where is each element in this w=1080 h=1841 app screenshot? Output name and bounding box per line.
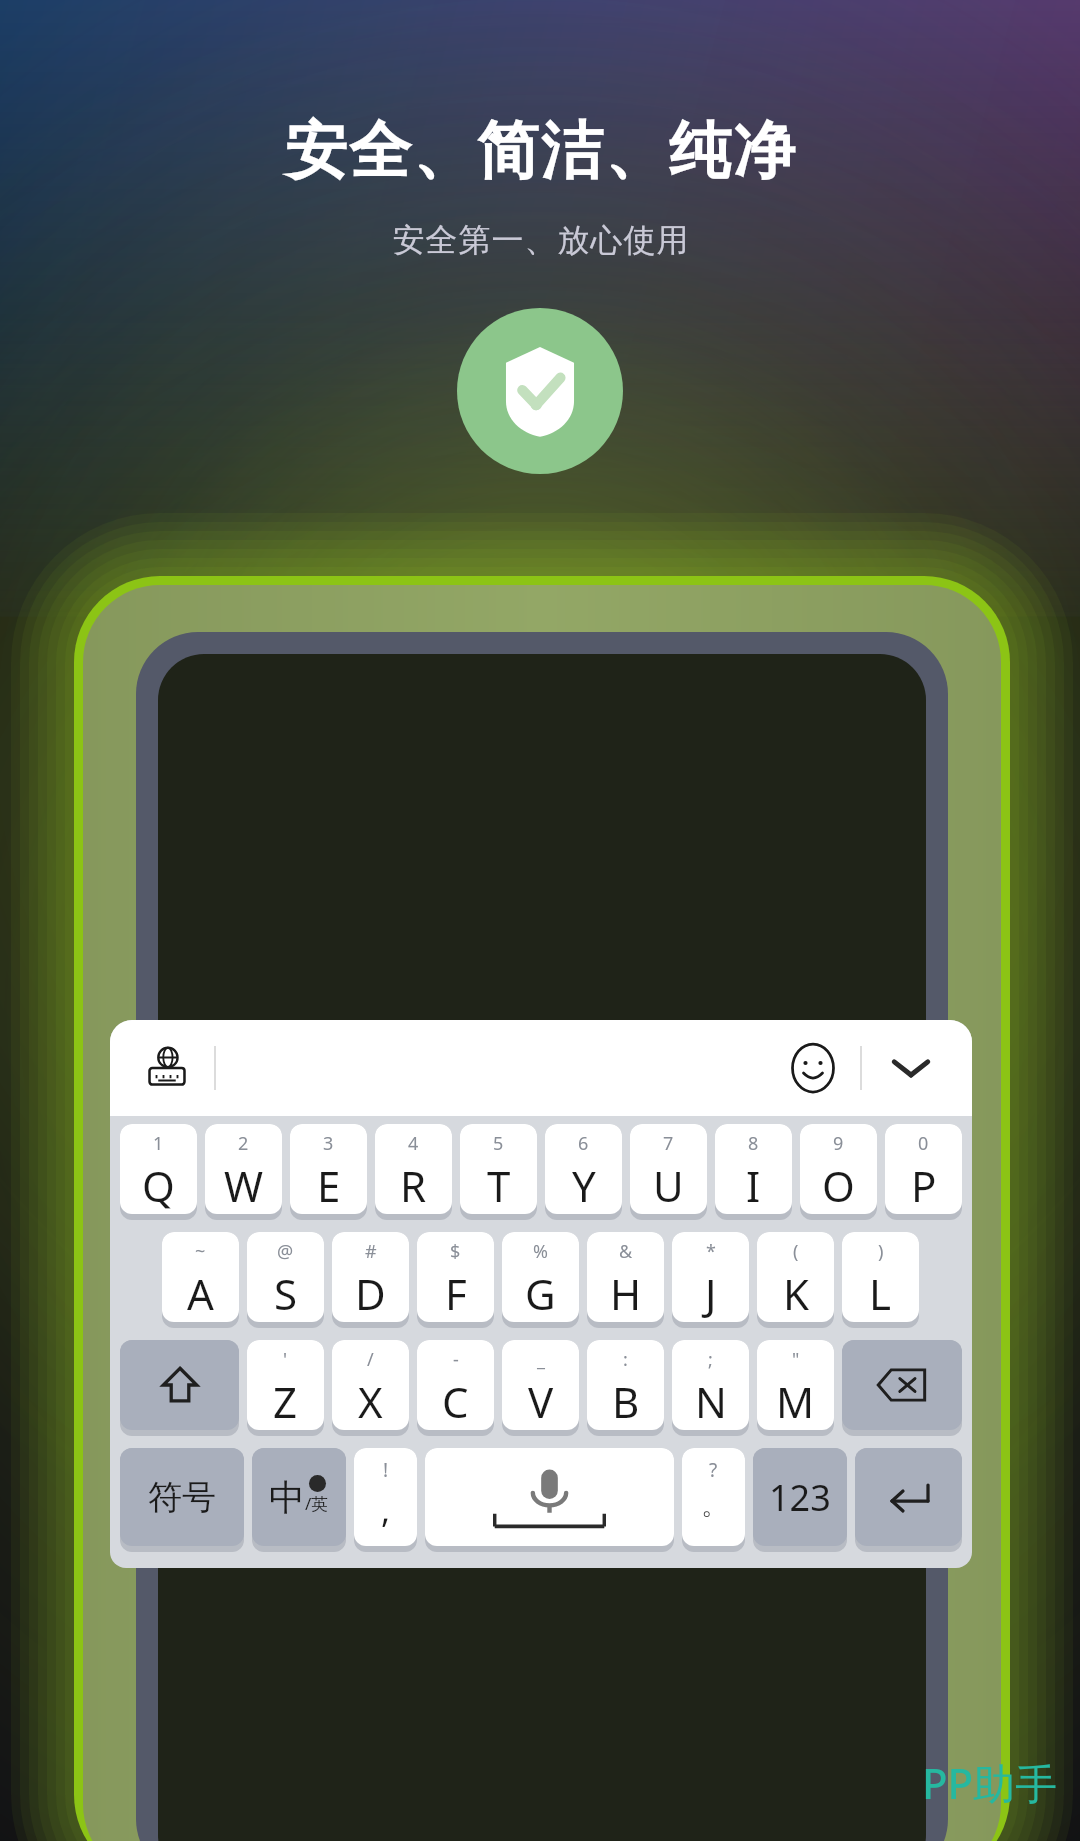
staticText: I bbox=[746, 1157, 761, 1214]
button[interactable]: % bbox=[502, 1232, 579, 1322]
button[interactable]: $ bbox=[417, 1232, 494, 1322]
button[interactable]: * bbox=[672, 1232, 749, 1322]
staticText: ( bbox=[793, 1239, 799, 1264]
button[interactable]: # bbox=[332, 1232, 409, 1322]
button[interactable]: 3 bbox=[290, 1124, 367, 1214]
staticText: # bbox=[365, 1239, 377, 1264]
button[interactable]: ' bbox=[247, 1340, 324, 1430]
staticText: B bbox=[612, 1373, 640, 1430]
staticText: 符号 bbox=[148, 1476, 216, 1519]
button[interactable]: ( bbox=[757, 1232, 834, 1322]
button[interactable]: Hide keyboard bbox=[880, 1037, 942, 1099]
other: Enter bbox=[884, 1472, 934, 1522]
staticText: U bbox=[653, 1157, 684, 1214]
staticText: % bbox=[533, 1239, 548, 1264]
staticText: , bbox=[381, 1487, 391, 1533]
staticText: J bbox=[705, 1265, 717, 1322]
other: Shift bbox=[158, 1363, 202, 1407]
staticText: P bbox=[911, 1157, 937, 1214]
staticText: PP助手 bbox=[922, 1754, 1058, 1811]
staticText: - bbox=[453, 1347, 459, 1372]
button[interactable]: Shift bbox=[120, 1340, 239, 1430]
staticText: N bbox=[695, 1373, 727, 1430]
button[interactable]: 0 bbox=[885, 1124, 962, 1214]
staticText: ' bbox=[283, 1347, 288, 1372]
button[interactable]: 6 bbox=[545, 1124, 622, 1214]
button[interactable]: _ bbox=[502, 1340, 579, 1430]
button[interactable]: ; bbox=[672, 1340, 749, 1430]
staticText: K bbox=[783, 1265, 809, 1322]
button[interactable]: 4 bbox=[375, 1124, 452, 1214]
staticText: V bbox=[528, 1373, 554, 1430]
staticText: T bbox=[487, 1157, 511, 1214]
staticText: ~ bbox=[195, 1239, 206, 1264]
staticText: & bbox=[619, 1239, 633, 1264]
button[interactable]: : bbox=[587, 1340, 664, 1430]
staticText: _ bbox=[537, 1347, 545, 1372]
staticText: 2 bbox=[238, 1131, 249, 1156]
button[interactable]: 8 bbox=[715, 1124, 792, 1214]
staticText: $ bbox=[450, 1239, 461, 1264]
staticText: / bbox=[367, 1347, 374, 1372]
other: Space bbox=[425, 1448, 674, 1546]
button[interactable]: ! bbox=[354, 1448, 417, 1546]
staticText: 8 bbox=[748, 1131, 759, 1156]
other: Backspace bbox=[875, 1358, 929, 1412]
button[interactable]: Space bbox=[425, 1448, 674, 1546]
staticText: H bbox=[610, 1265, 642, 1322]
button[interactable]: & bbox=[587, 1232, 664, 1322]
staticText: 。 bbox=[701, 1489, 727, 1522]
staticText: ; bbox=[708, 1347, 713, 1372]
staticText: C bbox=[442, 1373, 469, 1430]
button[interactable]: 中 bbox=[252, 1448, 346, 1546]
button[interactable]: 5 bbox=[460, 1124, 537, 1214]
staticText: Y bbox=[572, 1157, 596, 1214]
staticText: W bbox=[224, 1157, 264, 1214]
staticText: A bbox=[187, 1265, 214, 1322]
staticText: G bbox=[525, 1265, 556, 1322]
staticText: L bbox=[869, 1265, 892, 1322]
button[interactable]: 2 bbox=[205, 1124, 282, 1214]
button[interactable]: ? bbox=[682, 1448, 745, 1546]
staticText: D bbox=[355, 1265, 386, 1322]
staticText: 安全第一、放心使用 bbox=[392, 220, 689, 260]
button[interactable]: @ bbox=[247, 1232, 324, 1322]
staticText: 5 bbox=[493, 1131, 504, 1156]
staticText: X bbox=[358, 1373, 383, 1430]
staticText: : bbox=[623, 1347, 628, 1372]
staticText: ! bbox=[383, 1457, 389, 1483]
button[interactable]: 1 bbox=[120, 1124, 197, 1214]
button[interactable]: Input method settings bbox=[136, 1037, 198, 1099]
button[interactable]: ) bbox=[842, 1232, 919, 1322]
button[interactable]: - bbox=[417, 1340, 494, 1430]
button[interactable]: 123 bbox=[753, 1448, 847, 1546]
staticText: /英 bbox=[305, 1492, 329, 1515]
staticText: Z bbox=[273, 1373, 298, 1430]
button[interactable]: 9 bbox=[800, 1124, 877, 1214]
button[interactable]: Enter bbox=[855, 1448, 962, 1546]
staticText: 0 bbox=[918, 1131, 929, 1156]
button[interactable]: ~ bbox=[162, 1232, 239, 1322]
staticText: @ bbox=[277, 1239, 294, 1264]
staticText: 6 bbox=[578, 1131, 589, 1156]
staticText: 9 bbox=[833, 1131, 844, 1156]
button[interactable]: / bbox=[332, 1340, 409, 1430]
button[interactable]: 符号 bbox=[120, 1448, 244, 1546]
staticText: 中 bbox=[269, 1475, 305, 1520]
button[interactable]: Emoji bbox=[782, 1037, 844, 1099]
staticText: * bbox=[706, 1239, 716, 1264]
staticText: 1 bbox=[153, 1131, 164, 1156]
staticText: R bbox=[400, 1157, 427, 1214]
staticText: ? bbox=[709, 1457, 718, 1483]
staticText: 安全、简洁、纯净 bbox=[284, 112, 796, 190]
button[interactable]: Security verified bbox=[457, 308, 623, 474]
staticText: Q bbox=[142, 1157, 175, 1214]
button[interactable]: Backspace bbox=[842, 1340, 962, 1430]
staticText: S bbox=[274, 1265, 298, 1322]
button[interactable]: " bbox=[757, 1340, 834, 1430]
staticText: 7 bbox=[663, 1131, 674, 1156]
staticText: 4 bbox=[408, 1131, 419, 1156]
staticText: ) bbox=[878, 1239, 884, 1264]
button[interactable]: 7 bbox=[630, 1124, 707, 1214]
staticText: O bbox=[822, 1157, 855, 1214]
